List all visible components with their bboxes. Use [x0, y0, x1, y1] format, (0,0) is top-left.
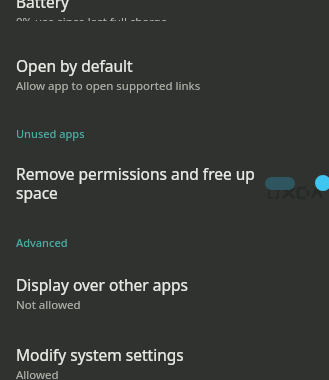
staticText: 0% use since last full charge	[16, 14, 168, 21]
staticText: Allowed	[16, 367, 59, 380]
button[interactable]: Modify system settings	[0, 344, 329, 380]
staticText: Allow app to open supported links	[16, 78, 201, 94]
button[interactable]: Remove permissions and free up space	[0, 163, 329, 203]
staticText: Battery	[16, 0, 70, 12]
button[interactable]: Open by default	[0, 55, 329, 94]
staticText: Open by default	[16, 55, 133, 76]
staticText: Not allowed	[16, 297, 81, 313]
staticText: Remove permissions and free up space	[16, 163, 256, 203]
staticText: Unused apps	[16, 126, 85, 141]
button[interactable]: Remove permissions toggle	[271, 168, 325, 198]
button[interactable]: Battery	[0, 0, 329, 21]
button[interactable]: Display over other apps	[0, 274, 329, 313]
staticText: Display over other apps	[16, 274, 188, 295]
staticText: Modify system settings	[16, 344, 184, 365]
staticText: Advanced	[16, 235, 68, 250]
